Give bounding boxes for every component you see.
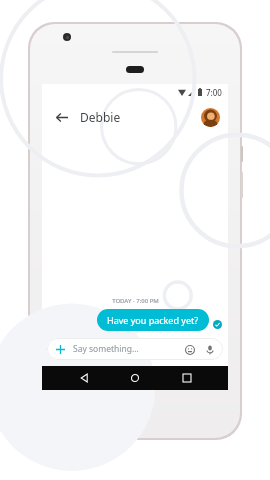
other: Message sent <box>213 320 222 329</box>
button[interactable]: Debbie <box>80 109 201 125</box>
button[interactable]: Contact profile <box>201 108 220 127</box>
staticText: TODAY · 7:00 PM <box>112 297 159 305</box>
button[interactable]: Back <box>74 368 94 388</box>
staticText: 7:00 <box>206 87 222 98</box>
button[interactable]: Add attachment <box>54 343 67 356</box>
button[interactable]: Voice message <box>203 343 216 356</box>
button[interactable]: Home <box>125 368 145 388</box>
button[interactable]: Add attachment <box>47 338 223 360</box>
button[interactable]: Recent apps <box>177 368 197 388</box>
button[interactable]: Have you packed yet? <box>97 309 209 331</box>
button[interactable]: Back <box>50 106 72 128</box>
button[interactable]: Insert sticker <box>183 343 196 356</box>
staticText: Debbie <box>80 109 121 125</box>
staticText: Say something… <box>73 343 139 355</box>
staticText: Have you packed yet? <box>107 314 199 326</box>
